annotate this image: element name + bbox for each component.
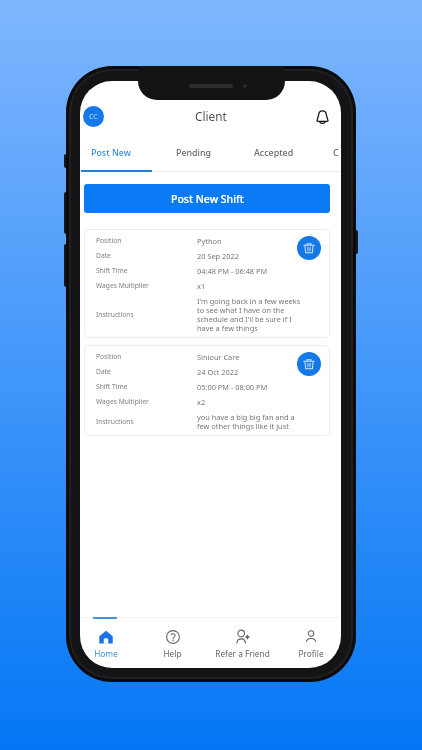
staticText: Date	[96, 367, 197, 376]
button[interactable]: Pending	[153, 134, 234, 170]
button[interactable]: CC	[83, 106, 104, 127]
button[interactable]: Help	[140, 619, 205, 668]
staticText: Shift Time	[96, 382, 197, 391]
button[interactable]: Post New	[80, 134, 153, 170]
button[interactable]: Notifications	[311, 105, 334, 128]
staticText: x1	[197, 281, 206, 291]
staticText: Accepted	[254, 146, 294, 158]
staticText: 20 Sep 2022	[197, 251, 239, 261]
button[interactable]: Position	[84, 345, 330, 436]
button[interactable]: Home	[80, 619, 139, 668]
button[interactable]: Completed	[316, 134, 341, 170]
button[interactable]: Post New Shift	[84, 184, 330, 213]
staticText: Wages Multiplier	[96, 281, 197, 290]
staticText: Instructions	[96, 310, 197, 319]
staticText: CC	[89, 112, 98, 122]
staticText: Python	[197, 236, 222, 246]
button[interactable]: Position	[84, 229, 330, 338]
staticText: Shift Time	[96, 266, 197, 275]
staticText: Post New Shift	[171, 192, 244, 206]
button[interactable]: Delete shift	[297, 352, 321, 376]
staticText: Post New	[91, 146, 131, 158]
button[interactable]: Profile	[278, 619, 341, 668]
staticText: Date	[96, 251, 197, 260]
staticText: Wages Multiplier	[96, 397, 197, 406]
staticText: Instructions	[96, 417, 197, 426]
staticText: Position	[96, 236, 197, 245]
staticText: Client	[195, 108, 227, 124]
staticText: 05:00 PM - 08:00 PM	[197, 382, 268, 392]
staticText: 24 Oct 2022	[197, 367, 239, 377]
staticText: you have a big big fan and a few other t…	[197, 412, 304, 431]
button[interactable]: Refer a Friend	[210, 619, 275, 668]
button[interactable]: Delete shift	[297, 236, 321, 260]
staticText: Pending	[176, 146, 212, 158]
staticText: Siniour Care	[197, 352, 240, 362]
staticText: Refer a Friend	[215, 648, 270, 659]
staticText: Profile	[298, 648, 324, 659]
staticText: 04:48 PM - 06:48 PM	[197, 266, 268, 276]
staticText: Position	[96, 352, 197, 361]
staticText: x2	[197, 397, 206, 407]
staticText: Home	[94, 648, 118, 659]
staticText: Help	[163, 648, 182, 659]
staticText: I'm going back in a few weeks to see wha…	[197, 296, 304, 333]
button[interactable]: Accepted	[234, 134, 316, 170]
